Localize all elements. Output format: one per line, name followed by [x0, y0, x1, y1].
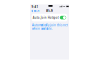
staticText: 9:41 — [31, 5, 38, 9]
staticText: Wi-Fi — [33, 9, 39, 13]
staticText: Wi-Fi — [46, 9, 53, 13]
button[interactable]: Wi-Fi — [31, 9, 40, 13]
staticText: Auto-Join Hotspot — [33, 16, 59, 19]
button[interactable]: Auto-Join Hotspot — [32, 14, 67, 21]
staticText: when available. — [32, 27, 53, 30]
staticText: Automatically join this net — [32, 23, 68, 27]
